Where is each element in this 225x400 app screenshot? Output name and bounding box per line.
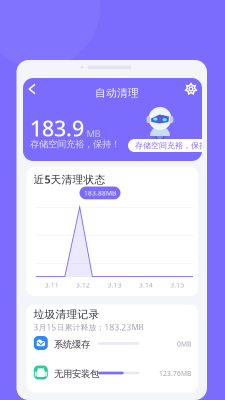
- button[interactable]: Settings: [181, 79, 201, 99]
- staticText: 3.13: [107, 280, 121, 289]
- staticText: 183.88MB: [84, 188, 116, 197]
- staticText: 3.14: [139, 280, 153, 289]
- staticText: 存储空间充裕，保持！: [135, 141, 215, 150]
- staticText: 系统缓存: [54, 339, 90, 350]
- button[interactable]: Back: [22, 79, 42, 99]
- button[interactable]: 系统缓存: [26, 336, 198, 352]
- staticText: 无用安装包: [54, 368, 99, 380]
- staticText: 近5天清理状态: [34, 172, 106, 186]
- staticText: MB: [86, 127, 100, 140]
- staticText: 183.9: [30, 114, 84, 142]
- staticText: 存储空间充裕，保持！: [30, 138, 120, 150]
- button[interactable]: 无用安装包: [26, 365, 198, 381]
- staticText: 自动清理: [95, 86, 139, 100]
- staticText: 垃圾清理记录: [34, 308, 100, 321]
- staticText: 3.15: [170, 280, 184, 289]
- staticText: 3月15日累计释放：183.23MB: [34, 322, 144, 333]
- staticText: 3.12: [76, 280, 90, 289]
- staticText: 3.11: [45, 280, 59, 289]
- staticText: 0MB: [177, 339, 191, 348]
- staticText: 123.76MB: [159, 369, 191, 378]
